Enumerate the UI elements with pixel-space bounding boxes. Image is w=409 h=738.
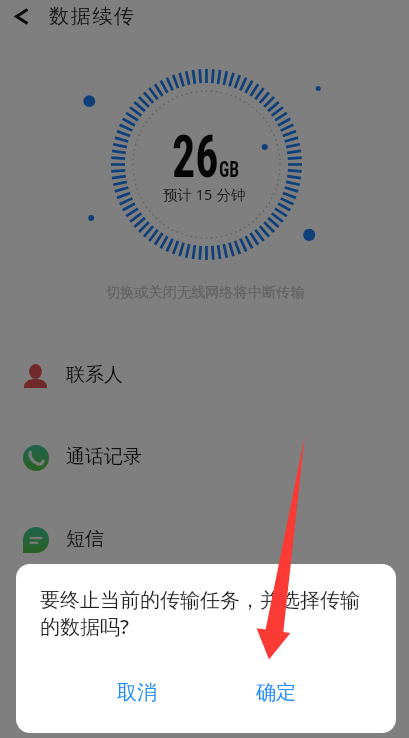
button[interactable]: 联系人 xyxy=(0,334,409,416)
button[interactable]: 确定 xyxy=(236,670,316,714)
button[interactable]: 通话记录 xyxy=(0,416,409,498)
staticText: 26 xyxy=(172,122,219,191)
staticText: 联系人 xyxy=(66,363,123,387)
staticText: 数据续传 xyxy=(49,4,136,29)
staticText: 切换或关闭无线网络将中断传输 xyxy=(106,283,305,301)
button[interactable]: Back xyxy=(0,0,44,33)
staticText: GB xyxy=(219,157,240,183)
staticText: 预计 15 分钟 xyxy=(163,184,246,204)
button[interactable]: 短信 xyxy=(0,498,409,580)
staticText: 通话记录 xyxy=(66,445,142,469)
staticText: 要终止当前的传输任务，并选择传输的数据吗? xyxy=(40,588,372,640)
staticText: 确定 xyxy=(256,680,296,705)
staticText: 短信 xyxy=(66,527,104,551)
staticText: 取消 xyxy=(117,680,157,705)
button[interactable]: 取消 xyxy=(97,670,177,714)
